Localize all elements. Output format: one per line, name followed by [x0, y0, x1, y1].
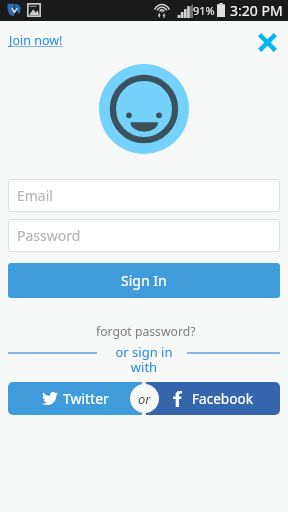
button[interactable]: Password [8, 219, 280, 252]
staticText: Sign In [121, 271, 167, 290]
staticText: or [138, 390, 151, 408]
staticText: Twitter [63, 389, 109, 408]
staticText: 91% [193, 3, 215, 18]
staticText: Facebook [192, 389, 253, 408]
button[interactable]: Twitter [8, 382, 142, 415]
staticText: forgot password? [96, 323, 196, 340]
button[interactable]: Join now! [4, 28, 68, 53]
staticText: or sign in with [104, 343, 184, 376]
staticText: Password [17, 226, 81, 245]
button[interactable]: Email [8, 179, 280, 212]
staticText: Email [17, 186, 53, 205]
staticText: 3:20 PM [230, 1, 283, 20]
button[interactable]: Sign In [8, 263, 280, 298]
button[interactable]: Close [252, 27, 283, 58]
button[interactable]: Facebook [146, 382, 280, 415]
staticText: Join now! [9, 32, 63, 49]
button[interactable]: forgot password? [90, 319, 202, 344]
